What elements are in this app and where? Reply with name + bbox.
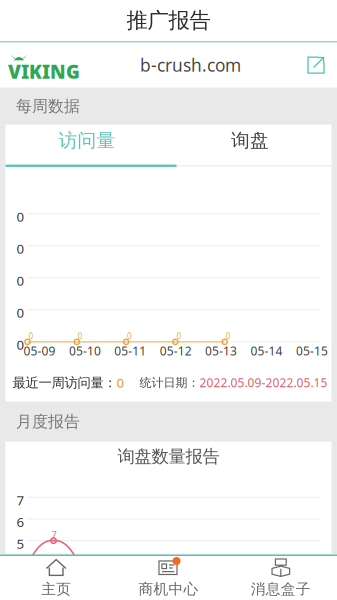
staticText: 7 [51, 528, 56, 541]
staticText: 0 [176, 331, 181, 341]
staticText: 0 [127, 331, 132, 341]
staticText: 每周数据 [16, 96, 80, 116]
staticText: 主页 [41, 580, 71, 598]
staticText: 7 [16, 491, 24, 509]
staticText: 商机中心 [138, 580, 198, 598]
staticText: 05-13 [205, 343, 237, 359]
staticText: 0 [116, 374, 124, 391]
staticText: 6 [16, 513, 24, 531]
staticText: b-crush.com [140, 54, 241, 77]
staticText: 统计日期： [139, 375, 199, 390]
staticText: 05-10 [69, 343, 101, 359]
staticText: 月度报告 [16, 412, 80, 431]
staticText: 2022.05.09-2022.05.15 [199, 375, 327, 391]
staticText: 0 [16, 336, 24, 353]
staticText: 05-14 [250, 343, 282, 359]
button[interactable]: 主页 [0, 556, 112, 600]
button[interactable]: 访问量 [5, 121, 168, 161]
staticText: 询盘数量报告 [117, 446, 219, 467]
staticText: 消息盒子 [251, 580, 311, 598]
staticText: VIKING [8, 59, 80, 84]
staticText: 访问量 [58, 129, 115, 152]
staticText: 05-09 [23, 343, 55, 359]
staticText: 05-12 [160, 343, 192, 359]
staticText: 5 [16, 535, 24, 552]
staticText: 0 [16, 304, 24, 321]
staticText: 0 [16, 240, 24, 257]
staticText: 0 [226, 331, 231, 341]
staticText: 0 [16, 272, 24, 289]
staticText: 05-15 [296, 343, 328, 359]
staticText: 05-11 [114, 343, 146, 359]
staticText: 最近一周访问量： [12, 374, 116, 391]
button[interactable]: 商机中心 [112, 556, 225, 600]
button[interactable]: 消息盒子 [225, 556, 337, 600]
staticText: 推广报告 [126, 7, 210, 34]
button[interactable]: Open website [303, 52, 329, 78]
button[interactable]: 询盘 [168, 121, 331, 161]
staticText: 0 [78, 331, 83, 341]
staticText: 0 [16, 208, 24, 225]
staticText: 0 [28, 331, 33, 341]
staticText: 询盘 [231, 129, 269, 152]
